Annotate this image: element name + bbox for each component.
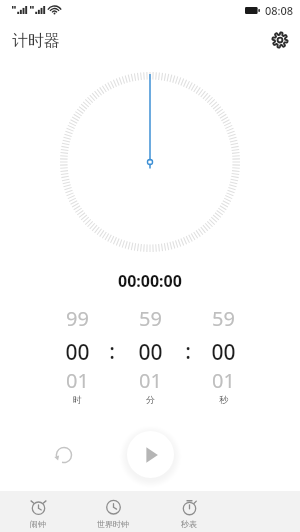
staticText: 01	[139, 367, 162, 394]
button[interactable]: 秒表	[157, 498, 221, 532]
staticText: 分	[146, 394, 155, 405]
button[interactable]: 分	[120, 300, 180, 390]
staticText: 00	[211, 338, 236, 367]
button[interactable]: 秒	[193, 300, 253, 390]
staticText: :	[185, 337, 191, 366]
staticText: 08:08	[265, 3, 294, 18]
button[interactable]: Reset	[44, 435, 84, 475]
staticText: 世界时钟	[97, 519, 129, 529]
staticText: 时	[73, 394, 82, 405]
staticText: 秒	[219, 394, 228, 405]
staticText: 00	[138, 338, 163, 367]
button[interactable]: 闹钟	[6, 498, 70, 532]
staticText: 00:00:00	[118, 270, 182, 292]
staticText: 59	[139, 305, 162, 332]
button[interactable]: 时	[47, 300, 107, 390]
staticText: 59	[212, 305, 235, 332]
staticText: 计时器	[12, 31, 60, 51]
staticText: 01	[212, 367, 235, 394]
button[interactable]: 世界时钟	[81, 498, 145, 532]
button[interactable]: Settings	[265, 25, 295, 55]
staticText: 秒表	[181, 519, 197, 529]
staticText: 00	[65, 338, 90, 367]
staticText: :	[109, 337, 115, 366]
staticText: 01	[66, 367, 89, 394]
staticText: 闹钟	[30, 519, 46, 529]
button[interactable]: Start	[127, 431, 174, 478]
staticText: 99	[66, 305, 89, 332]
